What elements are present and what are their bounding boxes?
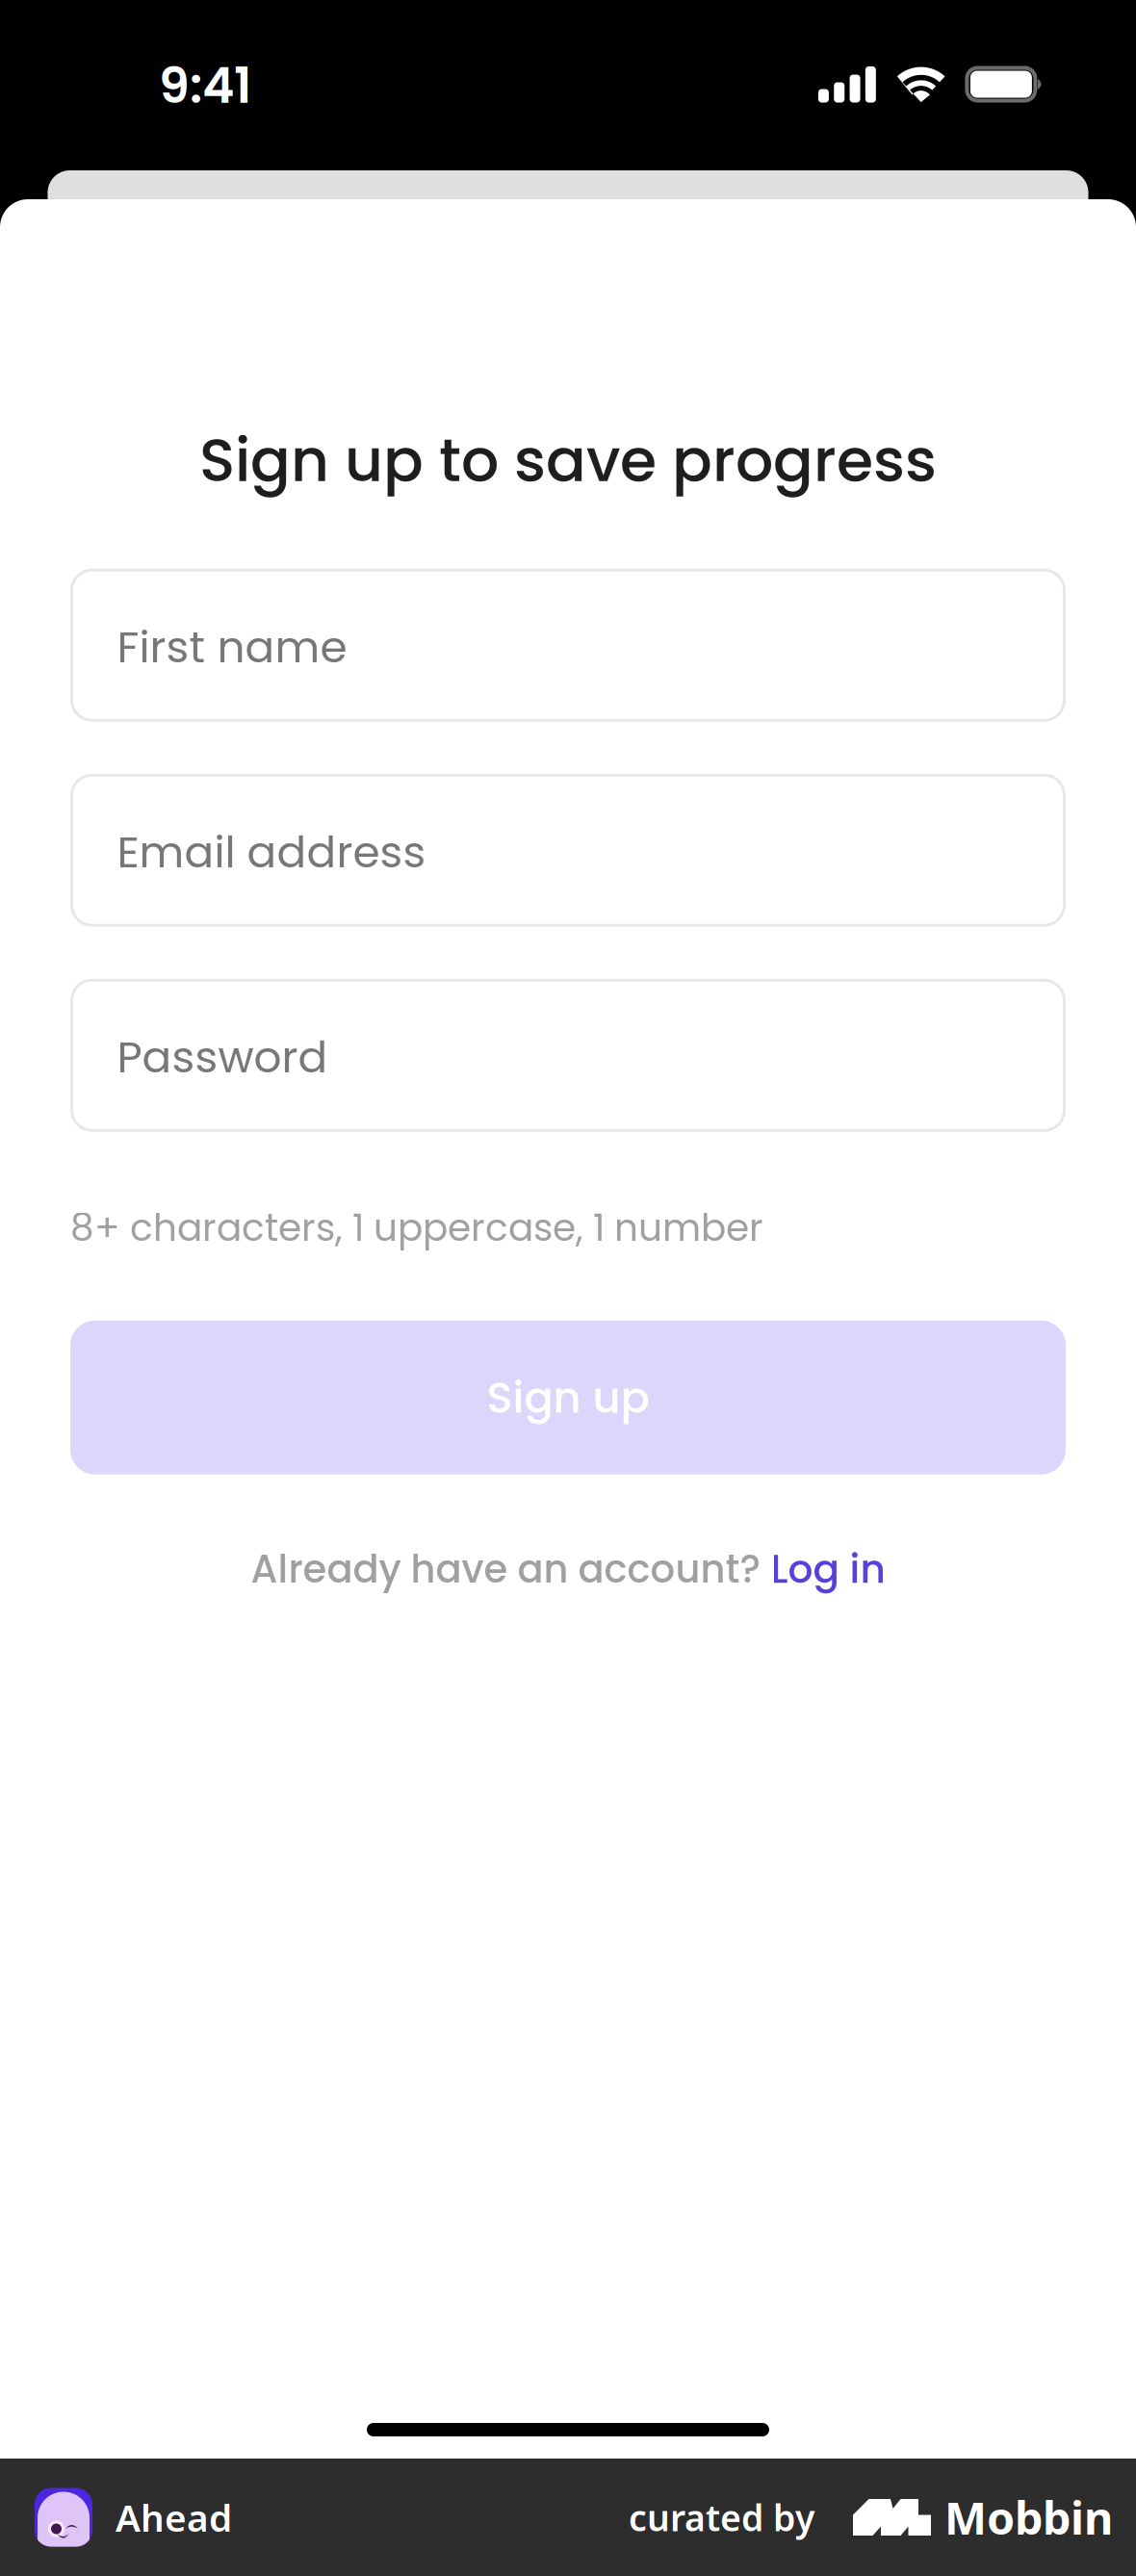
staticText: Sign up to save progress (199, 419, 937, 502)
staticText: Log in (771, 1542, 885, 1596)
button[interactable]: Sign up (70, 1320, 1066, 1474)
staticText: 8+ characters, 1 uppercase, 1 number (70, 1202, 763, 1254)
staticText: Ahead (116, 2493, 232, 2542)
staticText: curated by (629, 2493, 814, 2541)
staticText: Mobbin (944, 2487, 1113, 2547)
staticText: First name (117, 617, 347, 678)
button[interactable]: Password (72, 980, 1064, 1130)
staticText: 9:41 (159, 52, 251, 120)
staticText: Already have an account? (251, 1542, 771, 1596)
button[interactable]: Log in (771, 1542, 885, 1596)
button[interactable]: Email address (72, 775, 1064, 925)
staticText: Email address (117, 822, 426, 883)
button[interactable]: First name (72, 570, 1064, 720)
staticText: Sign up (487, 1367, 649, 1428)
staticText: Password (117, 1027, 328, 1088)
